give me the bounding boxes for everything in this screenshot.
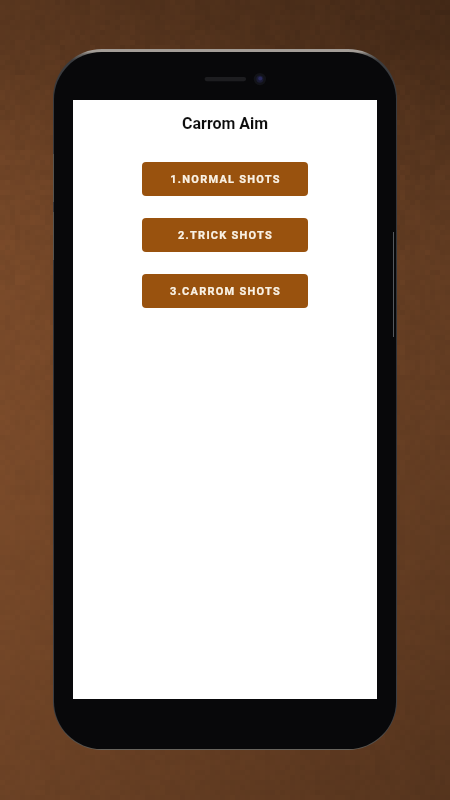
button[interactable]: 2.TRICK SHOTS (142, 218, 308, 252)
staticText: 3.CARROM SHOTS (170, 285, 281, 298)
staticText: Carrom Aim (182, 114, 269, 133)
staticText: 2.TRICK SHOTS (178, 229, 273, 242)
button[interactable]: 1.NORMAL SHOTS (142, 162, 308, 196)
staticText: 1.NORMAL SHOTS (170, 173, 281, 186)
button[interactable]: 3.CARROM SHOTS (142, 274, 308, 308)
